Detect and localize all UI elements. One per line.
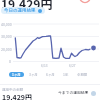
staticText: 19,429円 — [2, 92, 32, 100]
button[interactable]: 6ヶ月 — [43, 72, 58, 77]
other: Info — [91, 91, 96, 96]
staticText: 1年 — [63, 72, 69, 77]
button[interactable]: 1年 — [60, 72, 72, 77]
staticText: 20,000 — [1, 47, 12, 52]
staticText: 19,429円 — [1, 0, 53, 12]
button[interactable]: 今までの運用結果 — [58, 90, 96, 96]
staticText: 3ヶ月 — [29, 72, 38, 77]
staticText: 6/27 — [69, 63, 76, 68]
button[interactable]: 3ヶ月 — [26, 72, 41, 77]
staticText: 6/13 — [41, 63, 48, 68]
button[interactable]: 全期間 — [74, 72, 91, 77]
staticText: 30,000 — [1, 34, 12, 39]
staticText: 6ヶ月 — [46, 72, 55, 77]
staticText: 今までの運用結果 — [58, 90, 89, 96]
staticText: 40,000 — [1, 22, 12, 27]
staticText: 全期間 — [77, 72, 88, 77]
button[interactable]: 1ヶ月 — [9, 72, 24, 77]
button[interactable]: 今日の運用結果 — [1, 7, 45, 14]
staticText: 0 — [9, 59, 11, 64]
staticText: 今日の運用結果 — [4, 7, 36, 14]
staticText: 運用中の金額 — [2, 87, 23, 92]
staticText: 1ヶ月 — [12, 72, 21, 77]
